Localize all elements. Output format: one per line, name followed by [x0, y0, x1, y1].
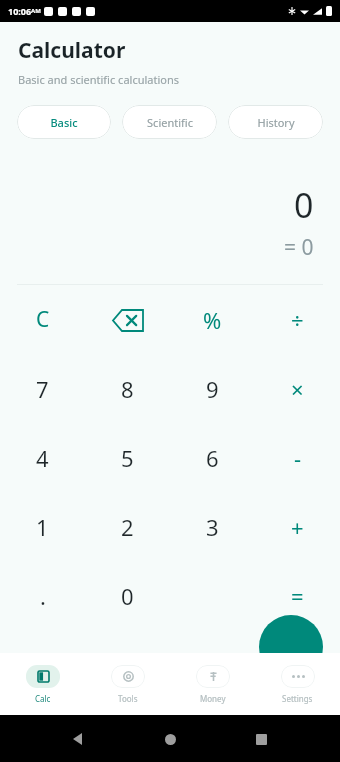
button[interactable]: 5 — [85, 423, 170, 492]
button[interactable]: History — [228, 105, 323, 139]
staticText: 0 — [121, 581, 134, 611]
staticText: 4 — [36, 443, 49, 473]
button[interactable]: Home — [158, 727, 182, 751]
staticText: 2 — [121, 512, 134, 542]
button[interactable]: Scientific — [122, 105, 217, 139]
staticText: 1 — [36, 512, 49, 542]
staticText: Basic — [50, 115, 78, 130]
button[interactable]: 1 — [0, 492, 85, 561]
staticText: - — [294, 443, 302, 473]
button[interactable]: 4 — [0, 423, 85, 492]
button[interactable]: Recents — [249, 727, 273, 751]
button[interactable]: Basic — [17, 105, 111, 139]
staticText: 3 — [206, 512, 219, 542]
staticText: 8 — [121, 374, 134, 404]
staticText: = — [291, 581, 304, 611]
staticText: 10:06 — [8, 5, 32, 17]
other: Backspace — [111, 303, 145, 337]
button[interactable]: Money — [170, 653, 255, 715]
button[interactable]: Calc — [0, 653, 85, 715]
staticText: Settings — [282, 693, 313, 704]
staticText: Money — [200, 693, 226, 704]
button[interactable]: × — [255, 354, 340, 423]
staticText: 0 — [294, 182, 314, 228]
staticText: Scientific — [147, 115, 193, 130]
button[interactable]: Settings — [255, 653, 340, 715]
button[interactable]: 0 — [85, 561, 170, 630]
button[interactable]: = — [255, 561, 340, 630]
staticText: History — [257, 115, 295, 130]
staticText: Calc — [35, 693, 51, 704]
staticText: 6 — [206, 443, 219, 473]
staticText: AM — [31, 7, 41, 15]
button[interactable]: 9 — [170, 354, 255, 423]
staticText: Tools — [118, 693, 138, 704]
staticText: + — [291, 512, 304, 542]
button[interactable]: 8 — [85, 354, 170, 423]
button[interactable]: 2 — [85, 492, 170, 561]
staticText: % — [203, 305, 222, 335]
button[interactable]: 7 — [0, 354, 85, 423]
staticText: ÷ — [291, 305, 304, 335]
button[interactable]: Back — [67, 727, 91, 751]
button[interactable]: - — [255, 423, 340, 492]
staticText: 5 — [121, 443, 134, 473]
button[interactable]: Equals — [259, 615, 323, 679]
staticText: . — [40, 581, 46, 611]
button[interactable]: + — [255, 492, 340, 561]
staticText: Basic and scientific calculations — [18, 72, 180, 87]
button[interactable]: . — [0, 561, 85, 630]
staticText: C — [36, 305, 50, 334]
button[interactable]: % — [170, 285, 255, 354]
button[interactable]: Tools — [85, 653, 170, 715]
staticText: 9 — [206, 374, 219, 404]
staticText: = 0 — [284, 233, 314, 262]
staticText: × — [291, 374, 304, 404]
button[interactable]: 6 — [170, 423, 255, 492]
button[interactable]: C — [0, 285, 85, 354]
staticText: Calculator — [18, 36, 126, 65]
button[interactable]: ÷ — [255, 285, 340, 354]
button[interactable]: 3 — [170, 492, 255, 561]
button[interactable]: Backspace — [85, 285, 170, 354]
staticText: 7 — [36, 374, 49, 404]
